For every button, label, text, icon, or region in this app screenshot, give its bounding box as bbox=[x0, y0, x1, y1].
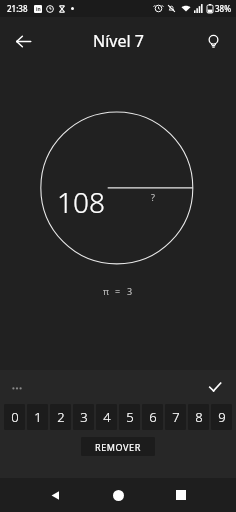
staticText: 21:38 bbox=[7, 3, 28, 14]
staticText: 0 bbox=[11, 408, 19, 426]
button[interactable]: 0 bbox=[4, 404, 25, 430]
staticText: 8 bbox=[195, 408, 203, 426]
staticText: 108 bbox=[57, 183, 105, 221]
staticText: Nível 7 bbox=[93, 30, 144, 52]
button[interactable]: 9 bbox=[211, 404, 232, 430]
staticText: in bbox=[36, 6, 41, 13]
button[interactable]: Hint bbox=[195, 23, 231, 59]
button[interactable]: REMOVER bbox=[81, 437, 155, 456]
button[interactable]: 7 bbox=[165, 404, 186, 430]
staticText: = bbox=[115, 285, 121, 297]
staticText: 4 bbox=[103, 408, 111, 426]
staticText: REMOVER bbox=[95, 441, 141, 453]
button[interactable]: Back bbox=[40, 480, 70, 510]
button[interactable]: Confirm bbox=[201, 373, 229, 401]
staticText: 7 bbox=[172, 408, 180, 426]
staticText: 3 bbox=[80, 408, 88, 426]
staticText: 9 bbox=[218, 408, 226, 426]
staticText: π bbox=[103, 285, 109, 297]
button[interactable]: More options bbox=[4, 374, 30, 400]
button[interactable]: 4 bbox=[96, 404, 117, 430]
staticText: 3 bbox=[127, 285, 133, 297]
button[interactable]: Recents bbox=[166, 480, 196, 510]
staticText: 5 bbox=[126, 408, 134, 426]
staticText: 2 bbox=[57, 408, 65, 426]
staticText: 1 bbox=[34, 408, 42, 426]
staticText: 6 bbox=[149, 408, 157, 426]
staticText: ? bbox=[151, 191, 155, 203]
button[interactable]: Home bbox=[103, 480, 133, 510]
button[interactable]: 3 bbox=[73, 404, 94, 430]
button[interactable]: 2 bbox=[50, 404, 71, 430]
button[interactable]: 1 bbox=[27, 404, 48, 430]
button[interactable]: 6 bbox=[142, 404, 163, 430]
button[interactable]: 8 bbox=[188, 404, 209, 430]
staticText: 38% bbox=[215, 3, 231, 14]
button[interactable]: 5 bbox=[119, 404, 140, 430]
button[interactable]: Back bbox=[4, 22, 42, 60]
